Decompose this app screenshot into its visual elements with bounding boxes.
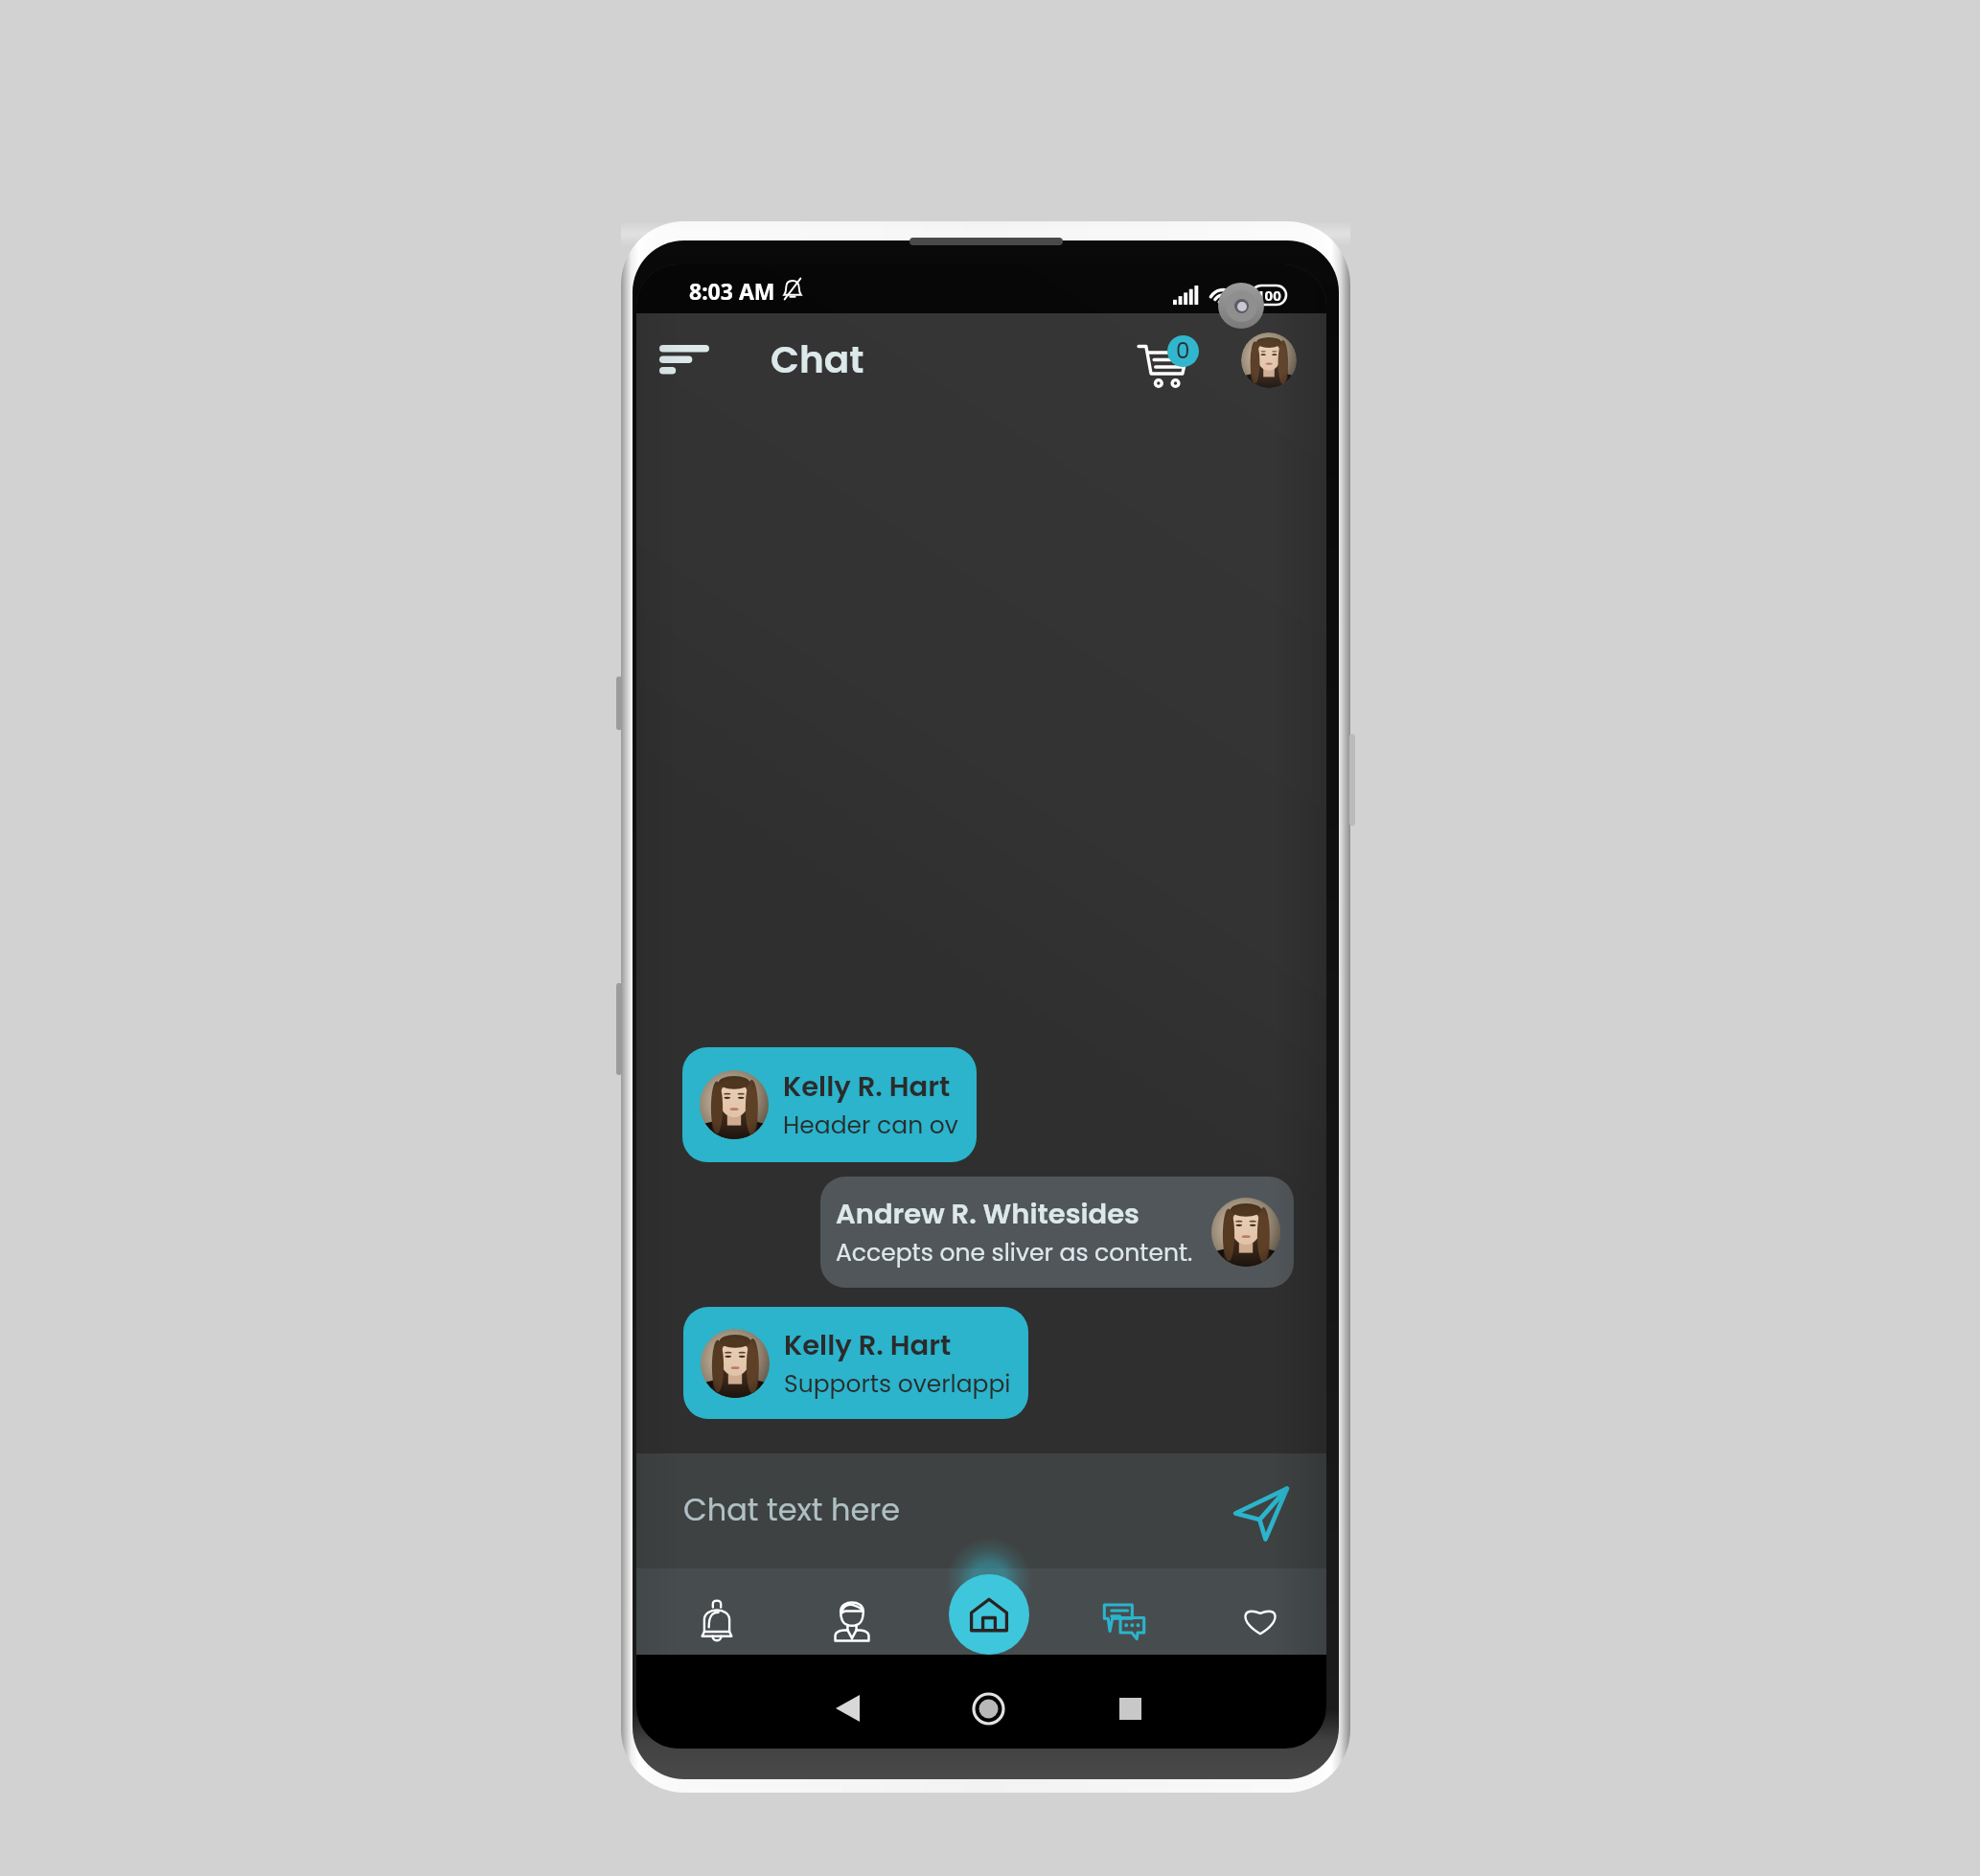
button[interactable]: Favorites [1228,1587,1293,1652]
staticText: 8:03 AM [689,276,775,306]
button[interactable]: Andrew R. Whitesides [820,1177,1294,1288]
button[interactable]: Kelly R. Hart [682,1047,977,1162]
button[interactable]: Send [1229,1480,1294,1545]
staticText: 0 [1176,335,1190,366]
button[interactable]: Back [820,1682,874,1735]
button[interactable]: Contacts [819,1587,885,1652]
staticText: 100 [1256,286,1281,305]
button[interactable]: Chat text here [636,1453,1326,1568]
staticText: Chat [771,333,864,386]
staticText: Kelly R. Hart [783,1067,951,1107]
staticText: Header can ov [783,1109,958,1142]
button[interactable]: Messages [1092,1587,1157,1652]
staticText: Chat text here [683,1488,901,1531]
staticText: Accepts one sliver as content. [836,1236,1193,1270]
button[interactable]: Home [949,1574,1029,1655]
button[interactable]: Menu [652,334,717,384]
staticText: Kelly R. Hart [784,1326,952,1365]
button[interactable]: Notifications [684,1587,749,1652]
staticText: Supports overlappi [784,1367,1011,1401]
button[interactable]: Cart [1132,325,1207,394]
staticText: Andrew R. Whitesides [836,1195,1140,1234]
button[interactable]: Home button [961,1682,1015,1735]
button[interactable]: Recents [1103,1682,1157,1735]
button[interactable]: Profile [1241,332,1297,388]
button[interactable]: Kelly R. Hart [683,1307,1028,1419]
